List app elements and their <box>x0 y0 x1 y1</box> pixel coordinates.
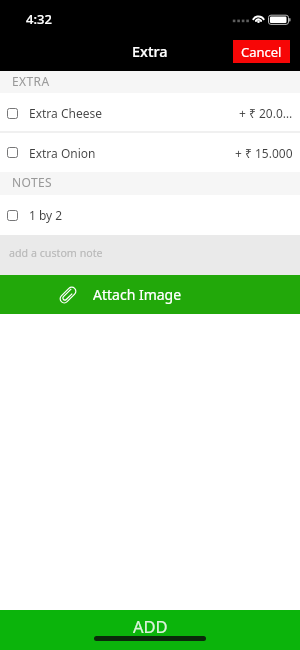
staticText: Extra <box>132 41 168 61</box>
staticText: Attach Image <box>93 285 182 304</box>
button[interactable]: Select Extra Cheese <box>7 108 18 119</box>
staticText: Cancel <box>241 43 282 61</box>
staticText: Extra Cheese <box>29 105 102 121</box>
button[interactable]: ADD <box>0 610 300 650</box>
button[interactable]: Select Extra Onion <box>0 133 300 172</box>
staticText: 1 by 2 <box>29 207 63 223</box>
staticText: 4:32 <box>26 10 52 28</box>
button[interactable]: Select 1 by 2 <box>0 195 300 235</box>
staticText: add a custom note <box>9 246 103 261</box>
staticText: + ₹ 20.0… <box>239 105 293 121</box>
staticText: ADD <box>133 615 168 637</box>
staticText: EXTRA <box>12 73 50 89</box>
button[interactable]: Cancel <box>233 40 290 63</box>
staticText: NOTES <box>12 174 53 190</box>
button[interactable]: add a custom note <box>0 235 300 275</box>
staticText: Extra Onion <box>29 145 96 161</box>
staticText: + ₹ 15.000 <box>235 145 293 161</box>
button[interactable]: Select Extra Cheese <box>0 93 300 133</box>
button[interactable]: Attach Image <box>0 275 300 314</box>
button[interactable]: Select 1 by 2 <box>7 210 18 221</box>
button[interactable]: Select Extra Onion <box>7 147 18 158</box>
